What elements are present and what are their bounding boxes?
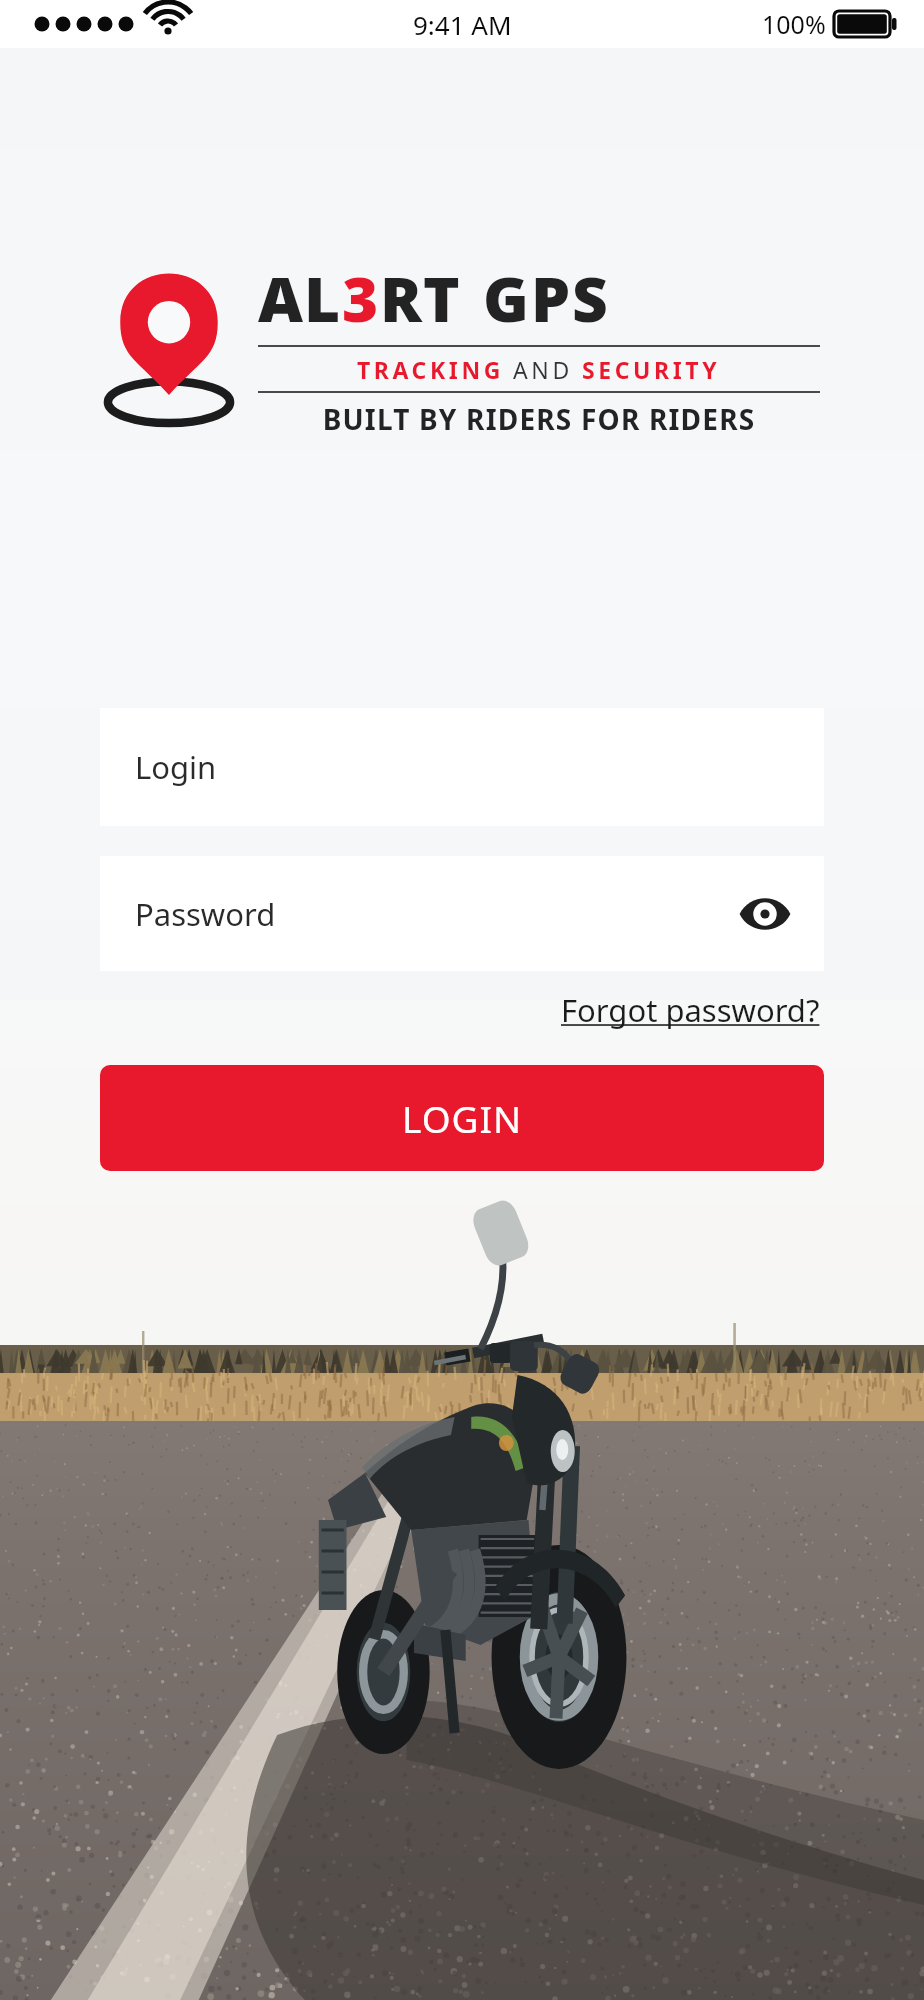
staticText: 3 — [342, 256, 380, 340]
button[interactable]: Password — [100, 856, 824, 971]
staticText: AND — [513, 354, 573, 385]
button[interactable]: Forgot password? — [557, 983, 824, 1037]
staticText: RT — [380, 256, 461, 340]
staticText: AL — [258, 256, 342, 340]
staticText: BUILT BY RIDERS FOR RIDERS — [258, 400, 820, 438]
staticText: 9:41 AM — [413, 7, 512, 42]
staticText: TRACKING — [357, 354, 504, 385]
button[interactable]: Login — [100, 708, 824, 826]
staticText: Login — [135, 746, 217, 788]
staticText: Forgot password? — [561, 989, 820, 1031]
staticText: LOGIN — [402, 1093, 523, 1143]
staticText: 100% — [762, 7, 826, 41]
staticText: GPS — [483, 256, 610, 340]
staticText: SECURITY — [582, 354, 721, 385]
button[interactable]: LOGIN — [100, 1065, 824, 1171]
staticText: Password — [135, 893, 276, 935]
button[interactable]: Show password — [728, 877, 802, 951]
